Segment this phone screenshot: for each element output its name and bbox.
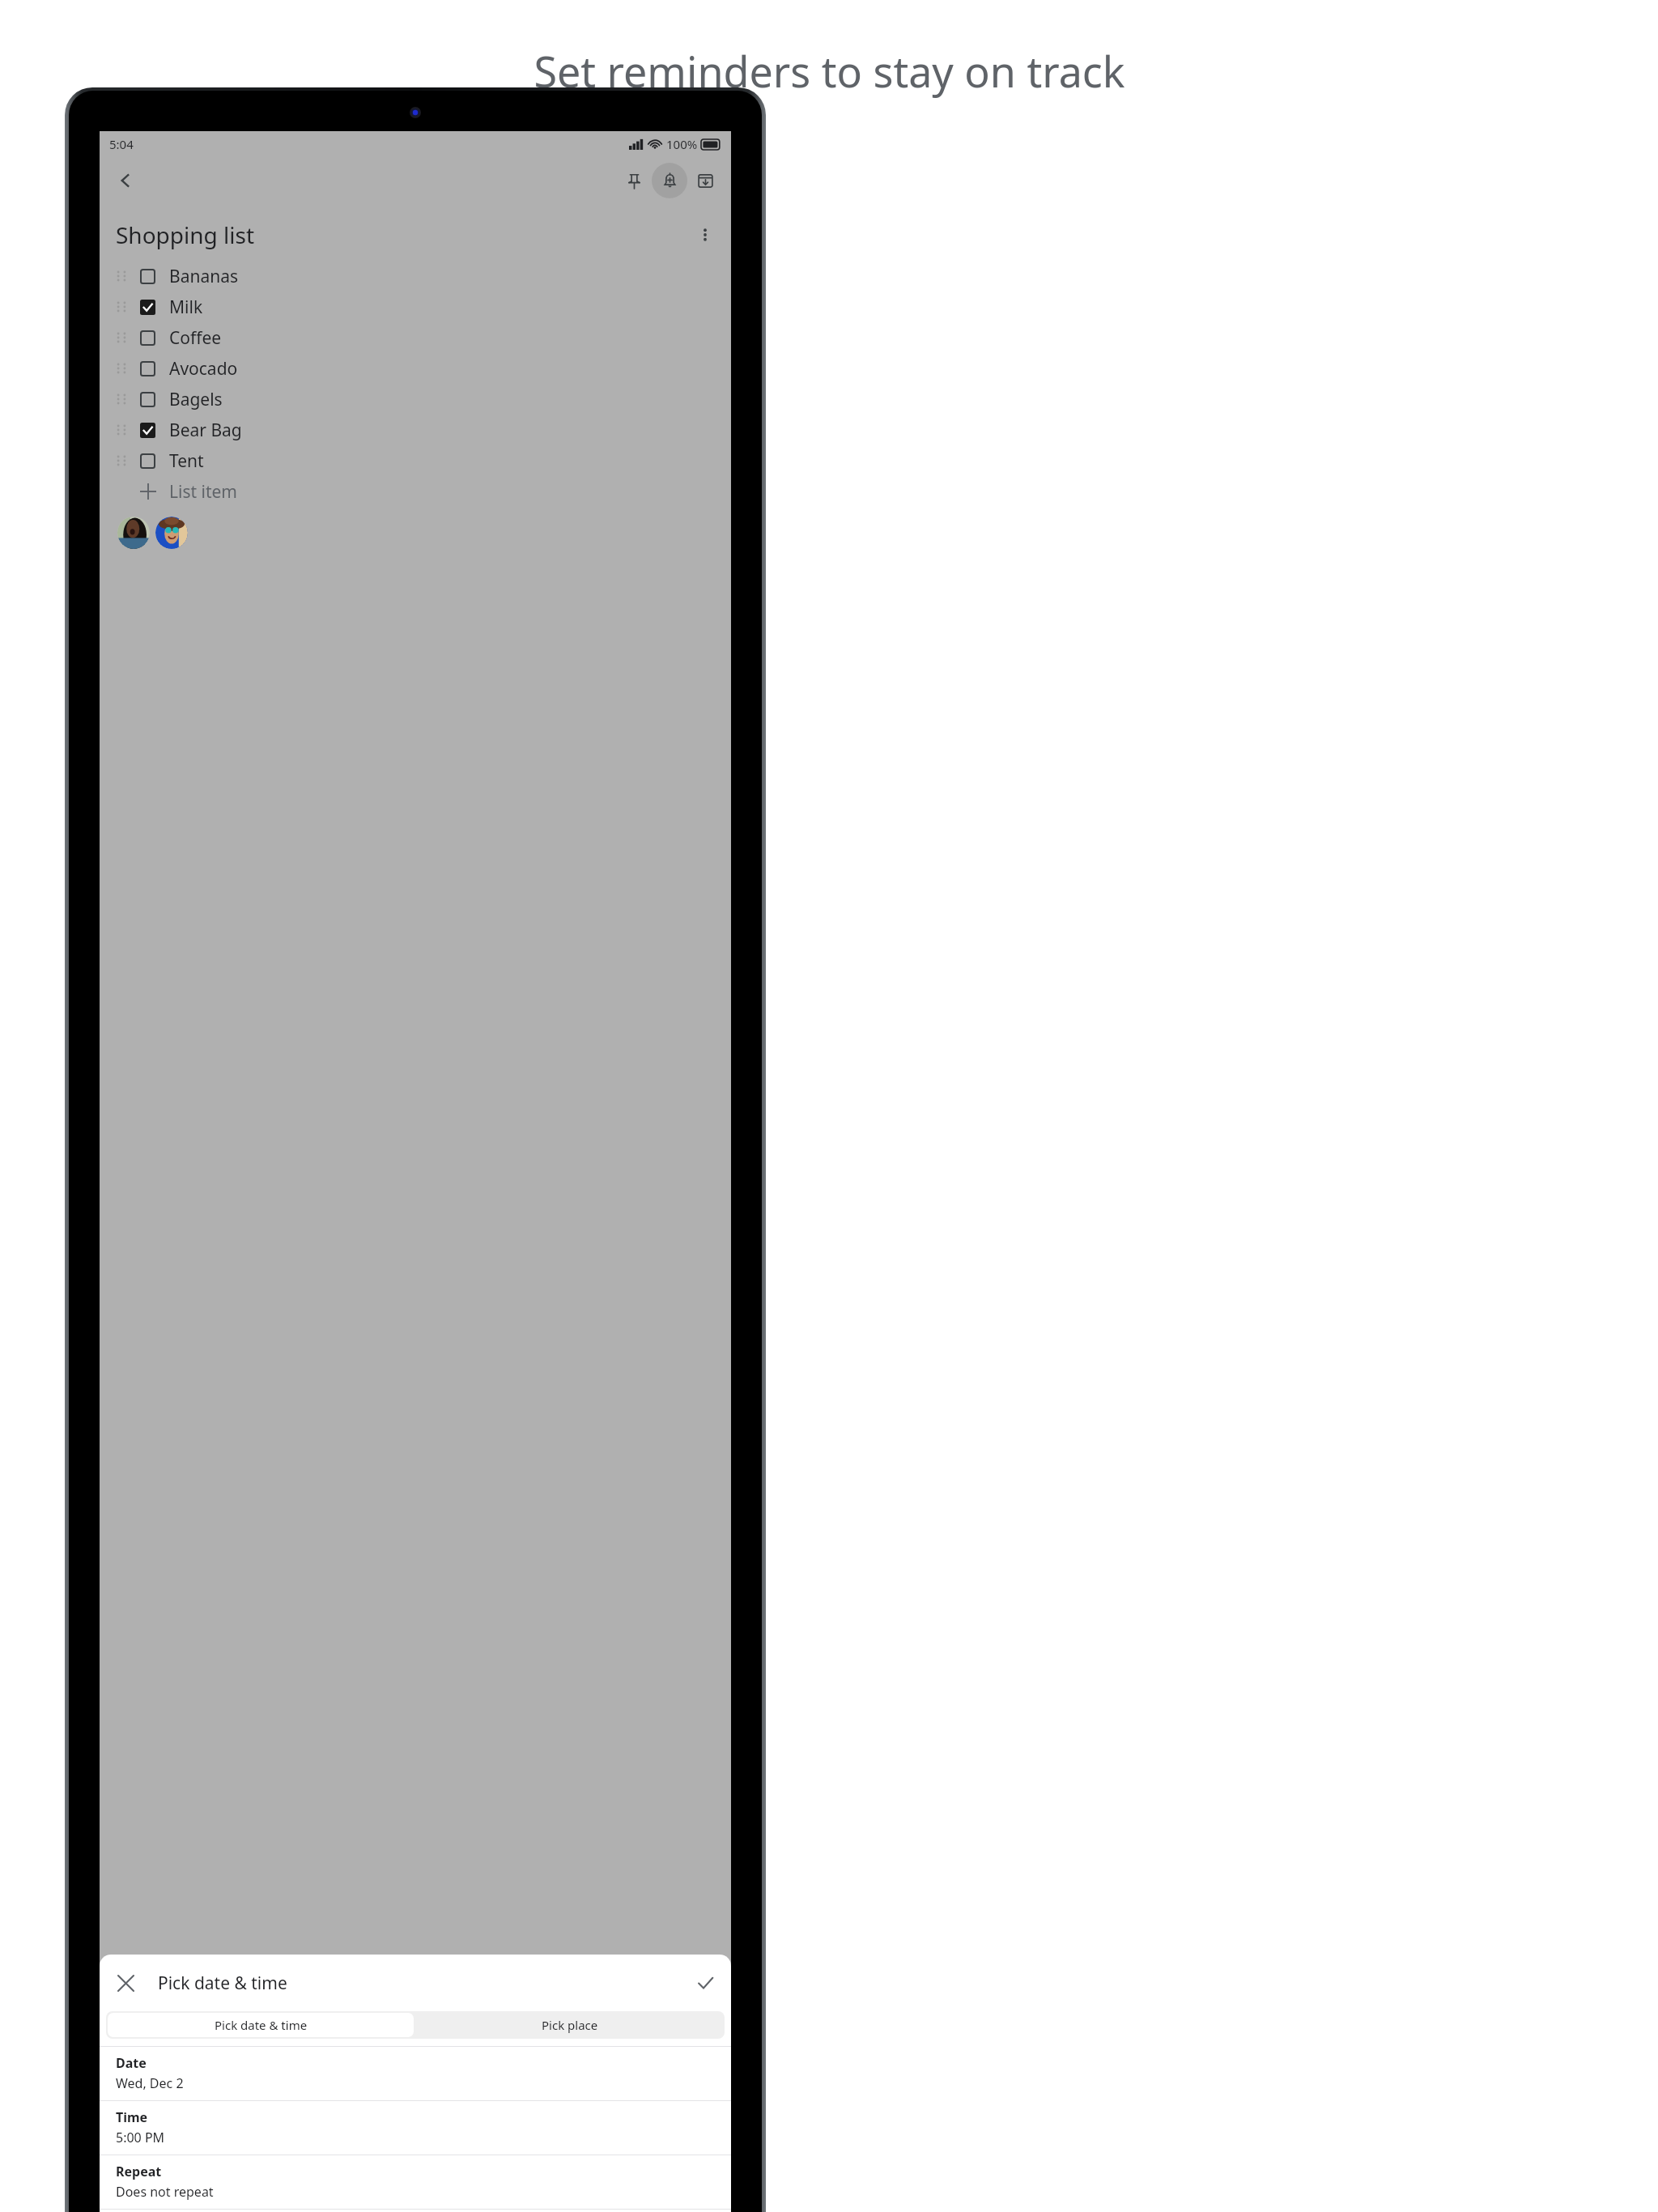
button[interactable]: Bananas [100,261,731,291]
button[interactable]: Pick date & time [108,2013,414,2037]
button[interactable]: Coffee [100,322,731,353]
staticText: Bear Bag [169,419,242,442]
staticText: 100% [666,136,698,152]
staticText: Avocado [169,357,238,381]
staticText: Repeat [116,2163,162,2180]
staticText: List item [169,480,237,504]
staticText: Pick date & time [215,2017,308,2033]
button[interactable]: Milk [100,291,731,322]
staticText: Does not repeat [116,2183,214,2201]
button[interactable]: Date [100,2047,731,2101]
staticText: Coffee [169,326,222,350]
button[interactable]: Archive [687,163,723,198]
staticText: Date [116,2054,147,2072]
staticText: Set reminders to stay on track [534,42,1125,100]
button[interactable]: Pin [616,163,652,198]
button[interactable]: Collaborator 2 [155,517,188,549]
staticText: Tent [169,449,204,473]
button[interactable]: Tent [100,445,731,476]
staticText: Bananas [169,265,239,288]
staticText: 5:00 PM [116,2129,165,2146]
button[interactable]: Add reminder [652,163,687,198]
button[interactable]: More options [687,217,723,253]
staticText: 5:04 [109,136,134,152]
staticText: Milk [169,296,203,319]
button[interactable]: Time [100,2101,731,2155]
button[interactable]: Close [108,1965,143,2001]
button[interactable]: Bear Bag [100,415,731,445]
staticText: Bagels [169,388,223,411]
button[interactable]: Bagels [100,384,731,415]
staticText: Wed, Dec 2 [116,2074,184,2092]
staticText: Shopping list [116,219,255,250]
button[interactable]: List item [100,476,731,507]
button[interactable]: Repeat [100,2155,731,2210]
staticText: Pick date & time [158,1972,287,1995]
button[interactable]: Collaborator 1 [117,517,150,549]
button[interactable]: Pick place [415,2011,725,2039]
staticText: Pick place [542,2017,598,2033]
button[interactable]: Back [108,163,143,198]
button[interactable]: Avocado [100,353,731,384]
button[interactable]: Save [687,1965,723,2001]
staticText: Time [116,2108,148,2126]
